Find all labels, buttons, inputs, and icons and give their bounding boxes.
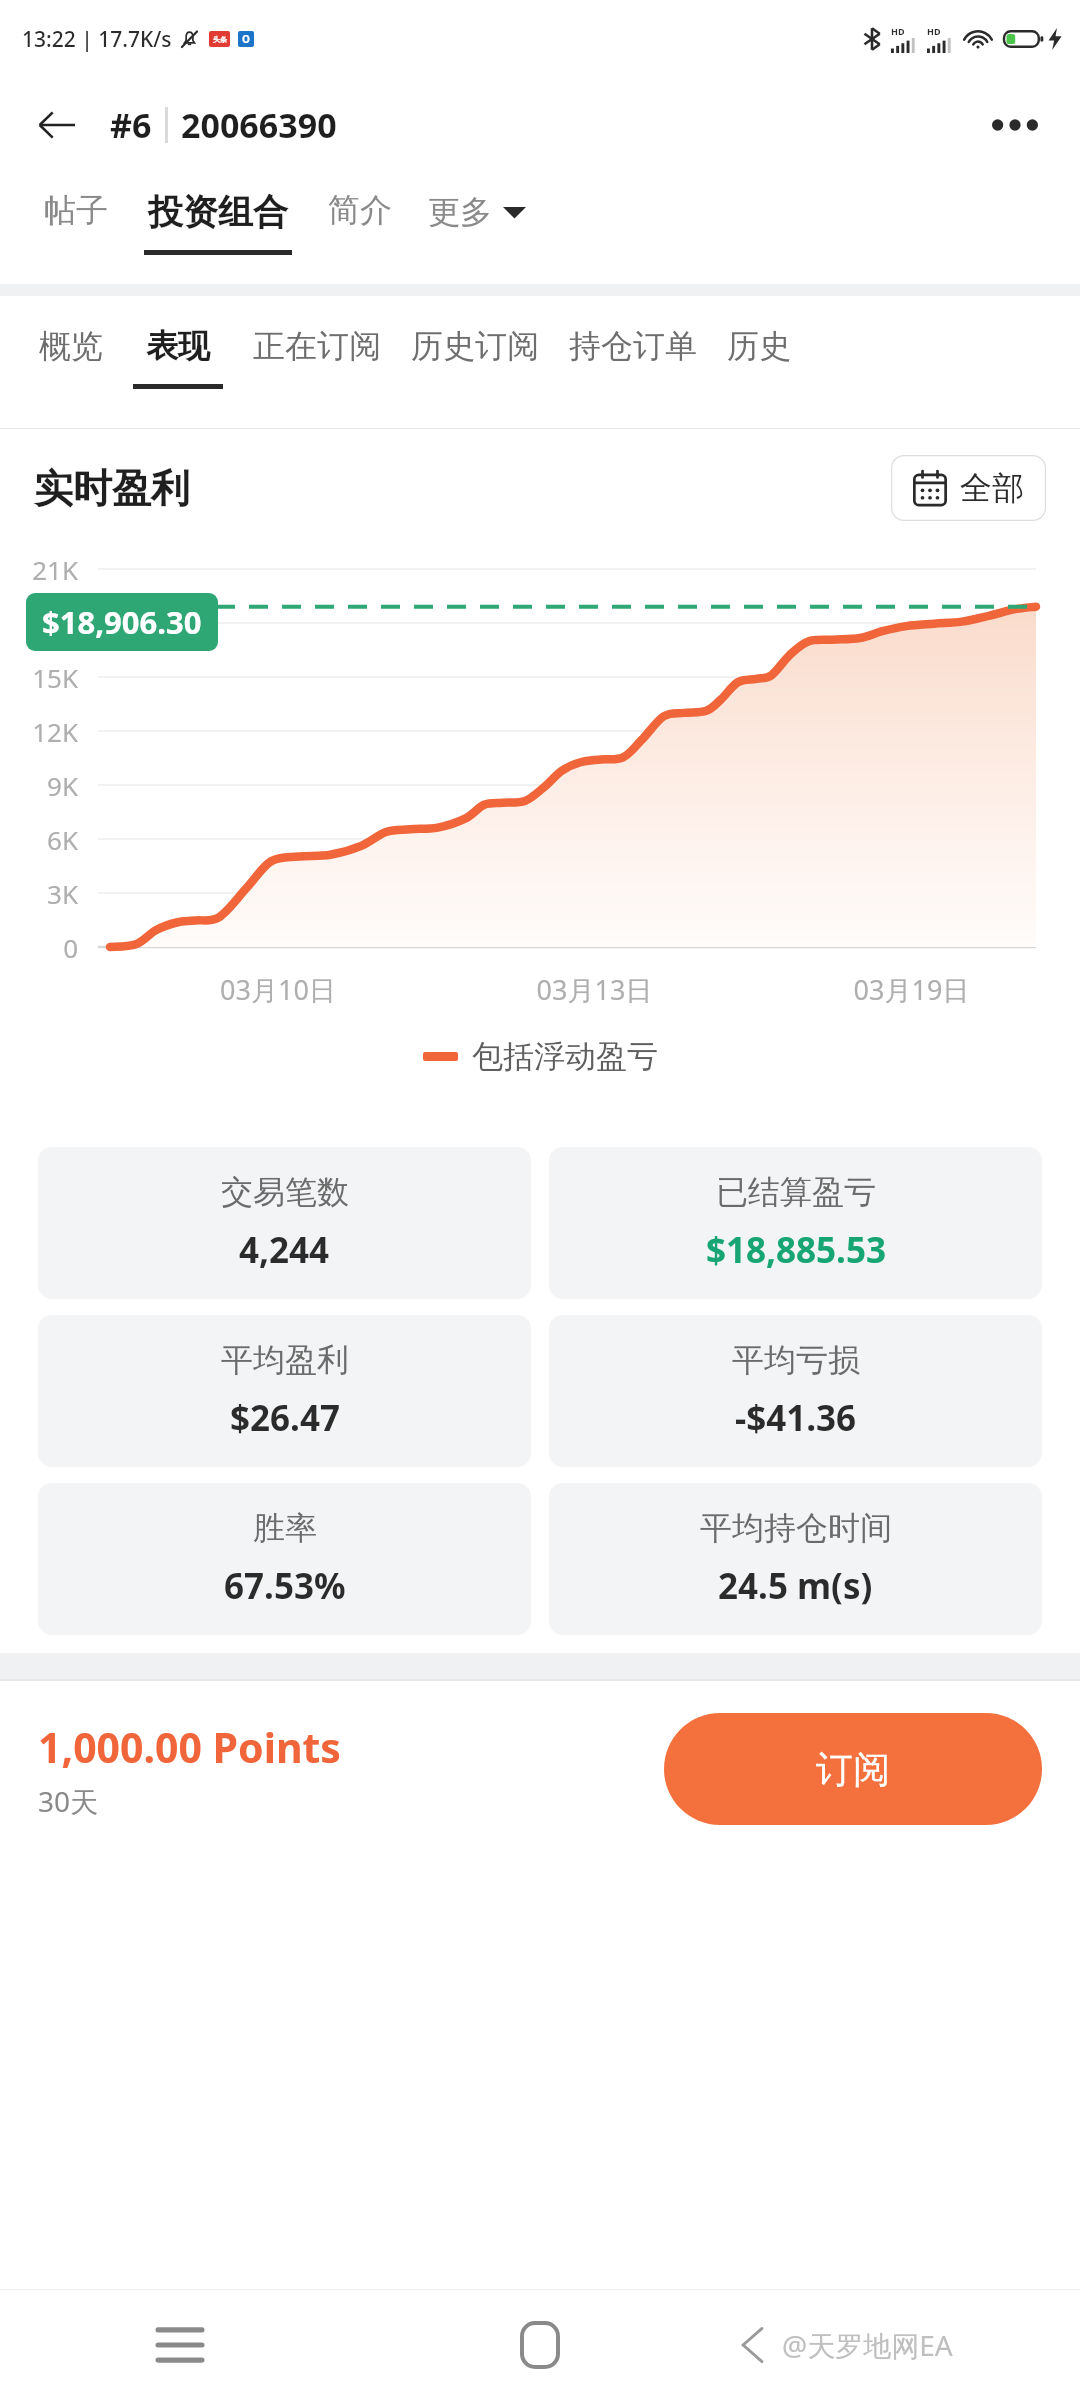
staticText: 持仓订单 — [569, 326, 697, 366]
staticText: 20066390 — [181, 102, 337, 148]
button[interactable]: 持仓订单 — [554, 296, 712, 384]
staticText: 平均亏损 — [732, 1340, 860, 1380]
staticText: 帖子 — [44, 190, 108, 230]
staticText: $26.47 — [230, 1394, 340, 1442]
staticText: 12K — [0, 714, 78, 749]
button[interactable]: 表现 — [118, 296, 238, 389]
staticText: 0 — [0, 930, 78, 965]
staticText: 更多 — [428, 192, 492, 232]
staticText: 13:22 | 17.7K/s — [22, 25, 172, 54]
staticText: #6 — [110, 102, 152, 148]
staticText: -$41.36 — [735, 1394, 857, 1442]
button[interactable]: Back — [720, 2314, 782, 2376]
button[interactable]: More options — [980, 95, 1050, 155]
staticText: $18,906.30 — [42, 601, 202, 643]
staticText: 15K — [0, 660, 78, 695]
staticText: 平均盈利 — [221, 1340, 349, 1380]
staticText: 1,000.00 Points — [38, 1719, 341, 1775]
staticText: 21K — [0, 552, 78, 587]
button[interactable]: 历史订阅 — [396, 296, 554, 384]
button[interactable]: 概览 — [24, 296, 118, 384]
staticText: 24.5 m(s) — [718, 1562, 873, 1610]
staticText: 03月10日 — [120, 971, 436, 1008]
staticText: 订阅 — [816, 1746, 890, 1793]
button[interactable]: 已结算盈亏 — [549, 1147, 1042, 1299]
button[interactable]: 全部 — [891, 455, 1046, 521]
button[interactable]: 订阅 — [664, 1713, 1042, 1825]
staticText: HD — [927, 25, 941, 37]
staticText: $18,885.53 — [706, 1226, 886, 1274]
staticText: HD — [891, 25, 905, 37]
button[interactable]: 帖子 — [26, 172, 126, 246]
staticText: 表现 — [146, 326, 210, 366]
staticText: 投资组合 — [148, 190, 288, 234]
button[interactable]: 简介 — [310, 172, 410, 246]
staticText: @天罗地网EA — [782, 2326, 953, 2364]
staticText: 胜率 — [253, 1508, 317, 1548]
button[interactable]: Recent apps — [136, 2301, 224, 2389]
button[interactable]: 胜率 — [38, 1483, 531, 1635]
staticText: 03月13日 — [436, 971, 753, 1008]
staticText: 交易笔数 — [221, 1172, 349, 1212]
button[interactable]: 历史 — [712, 296, 806, 384]
button[interactable]: 正在订阅 — [238, 296, 396, 384]
staticText: 实时盈利 — [34, 464, 190, 513]
staticText: 全部 — [960, 468, 1024, 508]
staticText: 67.53% — [224, 1562, 346, 1610]
button[interactable]: 平均持仓时间 — [549, 1483, 1042, 1635]
button[interactable]: 投资组合 — [126, 172, 310, 255]
staticText: 包括浮动盈亏 — [472, 1037, 658, 1076]
staticText: 18K — [0, 606, 78, 641]
staticText: 历史 — [727, 326, 791, 366]
button[interactable]: 平均盈利 — [38, 1315, 531, 1467]
staticText: 9K — [0, 768, 78, 803]
staticText: 30天 — [38, 1782, 99, 1820]
staticText: 3K — [0, 876, 78, 911]
staticText: 已结算盈亏 — [716, 1172, 876, 1212]
staticText: 历史订阅 — [411, 326, 539, 366]
staticText: 03月19日 — [753, 971, 1070, 1008]
staticText: 6K — [0, 822, 78, 857]
button[interactable]: 平均亏损 — [549, 1315, 1042, 1467]
staticText: 简介 — [328, 190, 392, 230]
staticText: 正在订阅 — [253, 326, 381, 366]
button[interactable]: 更多 — [410, 172, 544, 232]
staticText: 4,244 — [239, 1226, 330, 1274]
staticText: O — [242, 32, 250, 46]
staticText: 头条 — [213, 35, 227, 44]
button[interactable]: Home — [496, 2301, 584, 2389]
staticText: 概览 — [39, 326, 103, 366]
button[interactable]: 交易笔数 — [38, 1147, 531, 1299]
staticText: 平均持仓时间 — [700, 1508, 892, 1548]
button[interactable]: Back — [26, 94, 88, 156]
